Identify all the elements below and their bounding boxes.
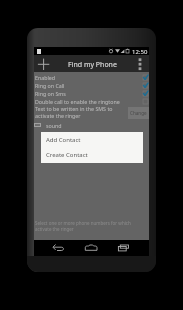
button[interactable]: Ring on Call — [34, 82, 149, 90]
staticText: Create Contact — [46, 151, 88, 159]
staticText: Add Contact — [46, 136, 81, 144]
staticText: 12:50 — [132, 48, 148, 56]
button[interactable]: Enabled — [34, 74, 149, 82]
button[interactable]: Double call to enable the ringtone — [34, 98, 149, 106]
button[interactable]: More options — [132, 56, 149, 71]
staticText: Ring on Sms — [35, 90, 66, 97]
button[interactable]: Back — [42, 240, 75, 256]
staticText: Change — [130, 110, 147, 116]
staticText: Ring on Call — [35, 82, 65, 89]
staticText: Find my Phone — [68, 60, 117, 70]
staticText: Text to be written in the SMS to activat… — [35, 105, 120, 119]
button[interactable]: Ring on Sms — [34, 90, 149, 98]
button[interactable]: Recent apps — [108, 240, 141, 256]
staticText: sound — [46, 122, 62, 129]
button[interactable]: Change — [128, 107, 149, 119]
button[interactable]: Add — [35, 56, 52, 71]
button[interactable]: sound — [34, 121, 149, 129]
staticText: Double call to enable the ringtone — [35, 98, 120, 105]
button[interactable]: Home — [75, 240, 108, 256]
staticText: Enabled — [35, 74, 56, 81]
staticText: Select one or more phone numbers for whi… — [35, 220, 147, 232]
button[interactable]: Create Contact — [41, 147, 143, 163]
button[interactable]: Add Contact — [41, 132, 143, 147]
